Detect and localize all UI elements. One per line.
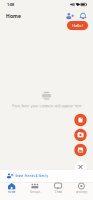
button[interactable]: Home (0, 182, 23, 200)
button[interactable]: Groups (23, 182, 46, 200)
staticText: Settings (76, 190, 87, 194)
button[interactable]: Invite friends & family (0, 170, 93, 182)
staticText: Groups (30, 190, 40, 194)
button[interactable]: Settings (70, 182, 93, 200)
button[interactable]: Camera (74, 129, 87, 141)
staticText: Hallo! (72, 23, 83, 28)
staticText: Home (8, 190, 16, 194)
button[interactable]: Photo (74, 144, 87, 156)
staticText: Home (6, 13, 21, 19)
staticText: Posts from your contacts will appear her… (11, 103, 81, 108)
button[interactable]: Chats (46, 182, 70, 200)
button[interactable]: Add contacts (66, 12, 74, 20)
button[interactable]: Notifications (74, 12, 87, 20)
button[interactable]: Write post (74, 114, 87, 126)
button[interactable]: Close (75, 161, 86, 173)
staticText: Invite friends & family (15, 174, 47, 178)
staticText: 1:08 (7, 2, 14, 7)
staticText: Chats (55, 190, 62, 194)
button[interactable]: Hallo! (67, 21, 88, 30)
